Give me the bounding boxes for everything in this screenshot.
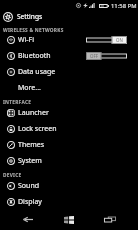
staticText: ON: [116, 37, 123, 43]
staticText: Bluetooth: [18, 51, 51, 61]
button[interactable]: Wi-Fi: [0, 32, 138, 48]
staticText: System: [18, 156, 42, 166]
button[interactable]: Data usage: [0, 64, 138, 80]
button[interactable]: Launcher: [0, 105, 138, 121]
staticText: OFF: [90, 53, 98, 59]
button[interactable]: Sound: [0, 178, 138, 194]
staticText: Data usage: [18, 67, 56, 77]
button[interactable]: Recent apps: [89, 209, 130, 230]
staticText: WIRELESS & NETWORKS: [3, 27, 64, 34]
button[interactable]: OFF: [86, 52, 127, 60]
button[interactable]: Lock screen: [0, 121, 138, 137]
staticText: Wi-Fi: [18, 35, 35, 45]
button[interactable]: Themes: [0, 137, 138, 153]
staticText: INTERFACE: [3, 99, 32, 106]
staticText: Themes: [18, 140, 45, 150]
staticText: Sound: [18, 181, 40, 191]
staticText: Lock screen: [18, 124, 57, 134]
staticText: Settings: [17, 12, 43, 21]
button[interactable]: ON: [86, 36, 127, 44]
button[interactable]: More...: [0, 80, 138, 96]
staticText: 11:58 PM: [111, 2, 137, 10]
button[interactable]: Home: [48, 209, 89, 230]
button[interactable]: Back: [7, 209, 48, 230]
button[interactable]: System: [0, 153, 138, 169]
button[interactable]: Bluetooth: [0, 48, 138, 64]
staticText: Launcher: [18, 108, 49, 118]
staticText: More...: [18, 83, 41, 93]
button[interactable]: Display: [0, 194, 138, 210]
staticText: DEVICE: [3, 172, 22, 179]
button[interactable]: Settings: [0, 9, 138, 24]
staticText: Display: [18, 197, 42, 207]
